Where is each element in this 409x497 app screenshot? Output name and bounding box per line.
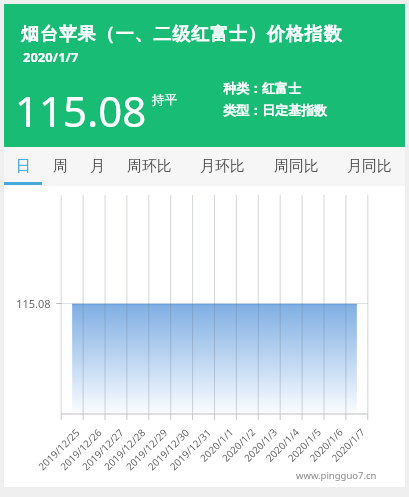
staticText: 周环比 (127, 157, 172, 176)
staticText: 周 (53, 157, 68, 176)
staticText: 日 (16, 157, 31, 176)
staticText: 周同比 (274, 157, 319, 176)
staticText: 烟台苹果（一、二级红富士）价格指数 (21, 23, 343, 46)
staticText: 类型：日定基指数 (223, 102, 327, 118)
staticText: 2020/1/7 (23, 48, 79, 66)
staticText: 月 (90, 157, 105, 176)
staticText: 持平 (152, 92, 177, 108)
button[interactable]: 周 (41, 147, 79, 186)
staticText: 月环比 (200, 157, 245, 176)
button[interactable]: 周环比 (119, 147, 179, 186)
button[interactable]: 日 (4, 147, 42, 186)
staticText: 月同比 (347, 157, 392, 176)
staticText: 种类：红富士 (223, 80, 301, 96)
button[interactable]: 周同比 (266, 147, 326, 186)
button[interactable]: 月环比 (192, 147, 252, 186)
staticText: 115.08 (15, 82, 147, 139)
button[interactable]: 月 (78, 147, 116, 186)
button[interactable]: 月同比 (339, 147, 399, 186)
